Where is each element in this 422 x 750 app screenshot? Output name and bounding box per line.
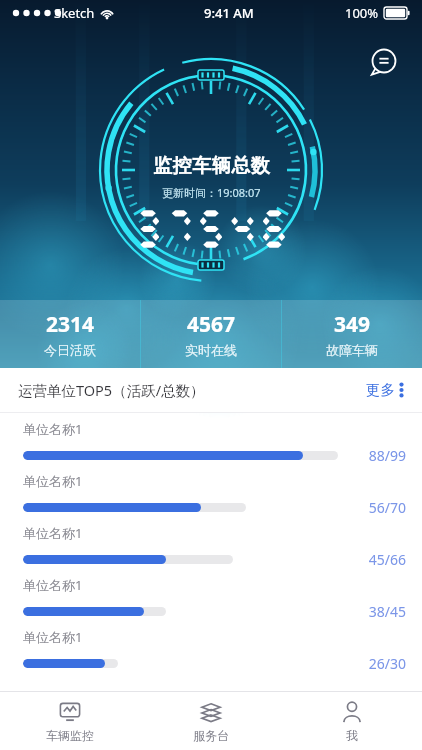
button[interactable]: 349 (282, 300, 422, 368)
staticText: 运营单位TOP5（活跃/总数） (18, 380, 205, 400)
staticText: 今日活跃 (44, 342, 96, 358)
staticText: 故障车辆 (326, 342, 378, 358)
button[interactable]: 单位名称1 (0, 465, 422, 517)
staticText: 更多 (366, 381, 395, 399)
staticText: 单位名称1 (23, 420, 83, 438)
staticText: 26/30 (368, 654, 406, 673)
staticText: 100% (345, 4, 379, 22)
staticText: 88/99 (368, 446, 406, 465)
staticText: 我 (346, 728, 358, 743)
staticText: 9:41 AM (204, 4, 254, 22)
staticText: 38/45 (368, 602, 406, 621)
button[interactable]: 单位名称1 (0, 569, 422, 621)
staticText: 56/70 (368, 498, 406, 517)
button[interactable]: 车辆监控 (0, 692, 140, 750)
staticText: 349 (334, 310, 371, 339)
staticText: 监控车辆总数 (153, 154, 270, 178)
staticText: 单位名称1 (23, 472, 83, 490)
staticText: 单位名称1 (23, 524, 83, 542)
staticText: 单位名称1 (23, 628, 83, 646)
staticText: 车辆监控 (46, 728, 94, 743)
button[interactable]: Messages (366, 44, 402, 80)
button[interactable]: 单位名称1 (0, 621, 422, 673)
button[interactable]: 服务台 (140, 692, 281, 750)
button[interactable]: 更多 (362, 375, 408, 405)
button[interactable]: 2314 (0, 300, 140, 368)
staticText: 45/66 (368, 550, 406, 569)
button[interactable]: 我 (281, 692, 422, 750)
button[interactable]: 单位名称1 (0, 413, 422, 465)
staticText: 实时在线 (185, 342, 237, 358)
staticText: 服务台 (193, 728, 229, 743)
button[interactable]: 4567 (141, 300, 281, 368)
button[interactable]: 单位名称1 (0, 517, 422, 569)
staticText: Sketch (54, 4, 95, 22)
staticText: 4567 (187, 310, 236, 339)
staticText: 更新时间：19:08:07 (162, 185, 261, 200)
staticText: 2314 (46, 310, 95, 339)
staticText: 单位名称1 (23, 576, 83, 594)
